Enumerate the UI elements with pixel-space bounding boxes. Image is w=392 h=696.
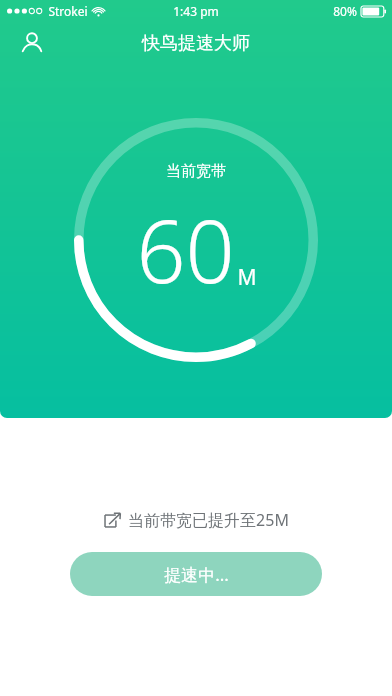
staticText: 80% — [333, 3, 357, 19]
staticText: 当前宽带 — [166, 162, 226, 181]
staticText: 当前带宽已提升至25M — [128, 509, 289, 531]
staticText: 1:43 pm — [173, 3, 219, 19]
staticText: Strokei — [48, 3, 88, 19]
staticText: M — [237, 263, 257, 292]
button[interactable]: 当前带宽已提升至25M — [98, 505, 295, 535]
staticText: 快鸟提速大师 — [142, 32, 250, 55]
staticText: 提速中... — [164, 563, 229, 586]
button[interactable]: Account — [12, 23, 52, 63]
staticText: 60 — [136, 191, 235, 308]
button[interactable]: 提速中... — [70, 552, 322, 596]
